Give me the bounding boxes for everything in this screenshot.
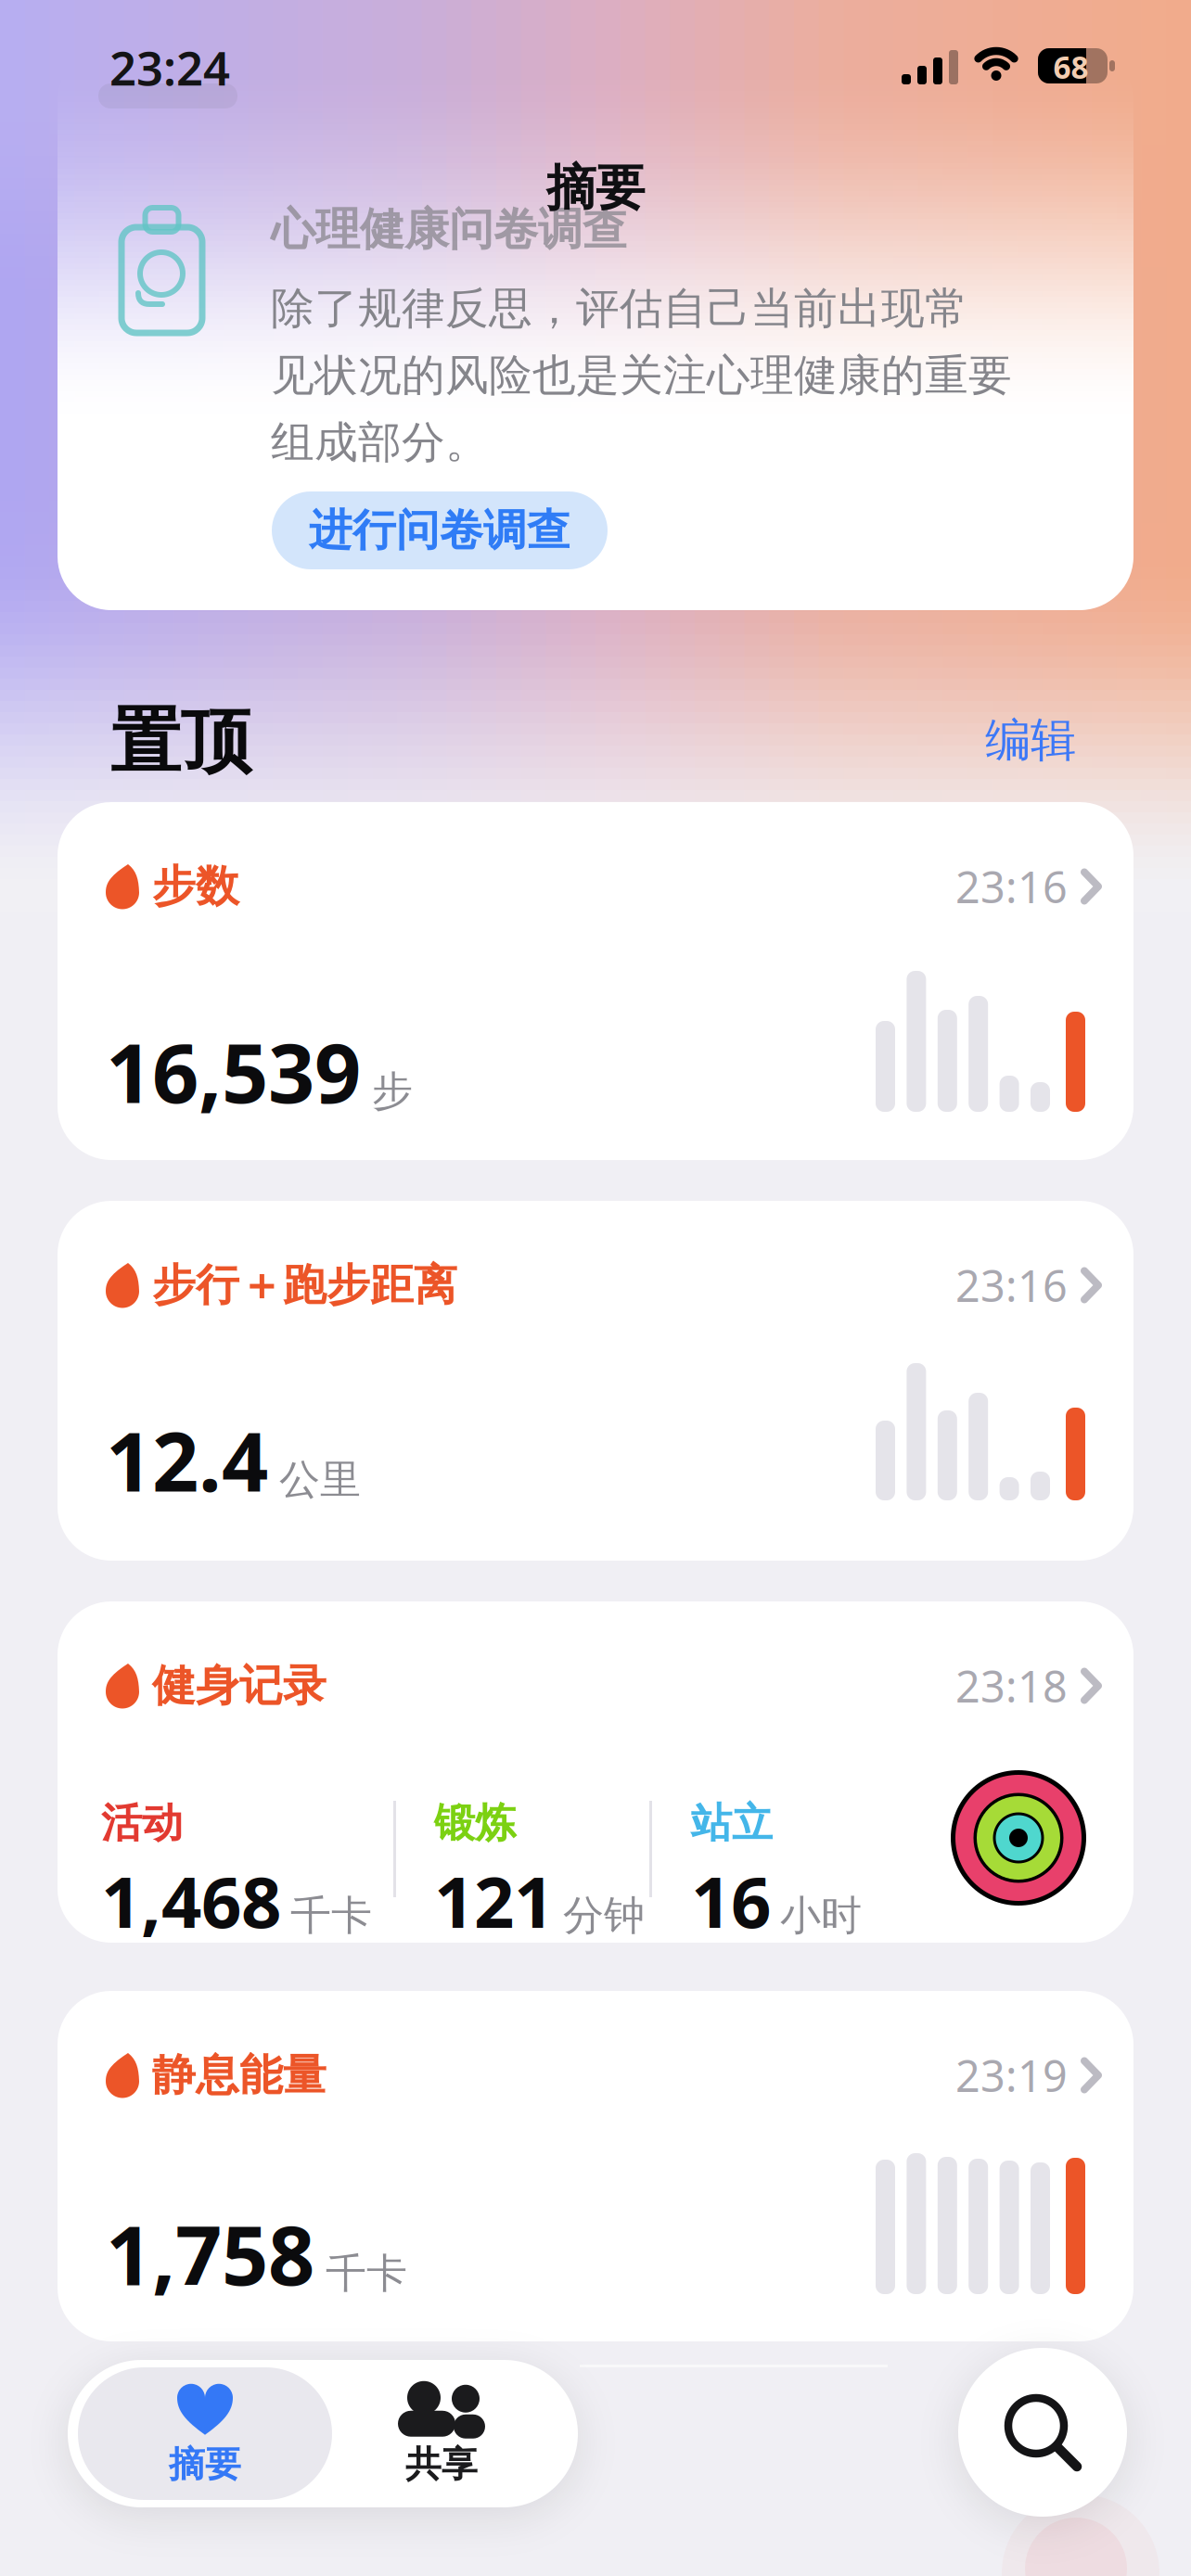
staticText: 摘要: [546, 158, 645, 218]
staticText: 千卡: [290, 1891, 372, 1941]
staticText: 活动: [101, 1798, 183, 1848]
staticText: 编辑: [985, 712, 1076, 768]
staticText: 1,468: [101, 1854, 281, 1947]
staticText: 23:16: [955, 1256, 1068, 1314]
staticText: 16,539: [106, 1017, 361, 1126]
staticText: 小时: [780, 1891, 862, 1941]
staticText: 步数: [152, 860, 239, 913]
button[interactable]: 摘要: [78, 2367, 332, 2500]
button[interactable]: 健身记录: [58, 1601, 1133, 1943]
staticText: 千卡: [326, 2248, 407, 2299]
staticText: 除了规律反思，评估自己当前出现常: [271, 282, 968, 335]
button[interactable]: 静息能量: [58, 1991, 1133, 2341]
staticText: 组成部分。: [271, 416, 489, 469]
staticText: 置顶: [110, 698, 251, 785]
staticText: 共享: [405, 2442, 478, 2486]
button[interactable]: 编辑: [985, 712, 1076, 768]
staticText: 静息能量: [152, 2049, 327, 2102]
staticText: 121: [434, 1854, 554, 1947]
button[interactable]: 步数: [58, 802, 1133, 1160]
staticText: 步: [372, 1066, 413, 1116]
staticText: 23:19: [955, 2047, 1068, 2104]
staticText: 站立: [691, 1798, 773, 1848]
button[interactable]: 共享: [330, 2367, 553, 2500]
button[interactable]: 搜索: [958, 2348, 1127, 2517]
staticText: 摘要: [169, 2442, 241, 2486]
staticText: 1,758: [106, 2200, 314, 2308]
staticText: 23:18: [955, 1657, 1068, 1715]
staticText: 12.4: [106, 1406, 268, 1514]
staticText: 23:16: [955, 858, 1068, 915]
staticText: 公里: [279, 1455, 361, 1505]
button[interactable]: 进行问卷调查: [272, 491, 608, 569]
staticText: 进行问卷调查: [309, 504, 570, 557]
staticText: 步行＋跑步距离: [152, 1259, 457, 1312]
staticText: 68: [1053, 46, 1089, 87]
staticText: 分钟: [563, 1891, 645, 1941]
staticText: 健身记录: [152, 1659, 327, 1712]
staticText: 16: [691, 1854, 771, 1947]
staticText: 23:24: [109, 36, 230, 99]
staticText: 见状况的风险也是关注心理健康的重要: [271, 349, 1012, 402]
staticText: 心理健康问卷调查: [271, 202, 627, 257]
staticText: 锻炼: [434, 1798, 516, 1848]
button[interactable]: 步行＋跑步距离: [58, 1201, 1133, 1561]
